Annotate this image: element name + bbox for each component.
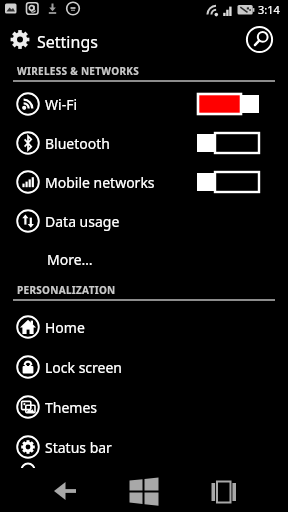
button[interactable] bbox=[197, 172, 259, 192]
staticText: PERSONALIZATION bbox=[17, 283, 116, 297]
button[interactable]: Lock screen bbox=[0, 347, 288, 387]
staticText: Wi-Fi bbox=[45, 95, 78, 114]
button[interactable] bbox=[197, 133, 259, 153]
staticText: Home bbox=[45, 318, 85, 337]
button[interactable] bbox=[243, 23, 275, 55]
staticText: Bluetooth bbox=[45, 134, 110, 153]
staticText: 3:14 bbox=[258, 2, 280, 17]
button[interactable]: Mobile networks bbox=[0, 162, 288, 202]
staticText: More… bbox=[47, 250, 93, 269]
staticText: Settings bbox=[37, 31, 98, 53]
staticText: Status bar bbox=[45, 438, 112, 457]
button[interactable]: More… bbox=[0, 241, 288, 277]
button[interactable] bbox=[96, 468, 192, 512]
staticText: Mobile networks bbox=[45, 173, 155, 192]
button[interactable] bbox=[198, 94, 259, 114]
staticText: WIRELESS & NETWORKS bbox=[17, 64, 140, 78]
button[interactable]: Home bbox=[0, 307, 288, 347]
button[interactable]: Themes bbox=[0, 387, 288, 427]
button[interactable]: Wi-Fi bbox=[0, 84, 288, 124]
button[interactable]: Data usage bbox=[0, 201, 288, 241]
button[interactable] bbox=[0, 468, 96, 512]
button[interactable]: Status bar bbox=[0, 427, 288, 467]
button[interactable]: Bluetooth bbox=[0, 123, 288, 163]
staticText: Data usage bbox=[45, 212, 120, 231]
staticText: Themes bbox=[45, 398, 98, 417]
staticText: Lock screen bbox=[45, 358, 123, 377]
button[interactable] bbox=[192, 468, 288, 512]
